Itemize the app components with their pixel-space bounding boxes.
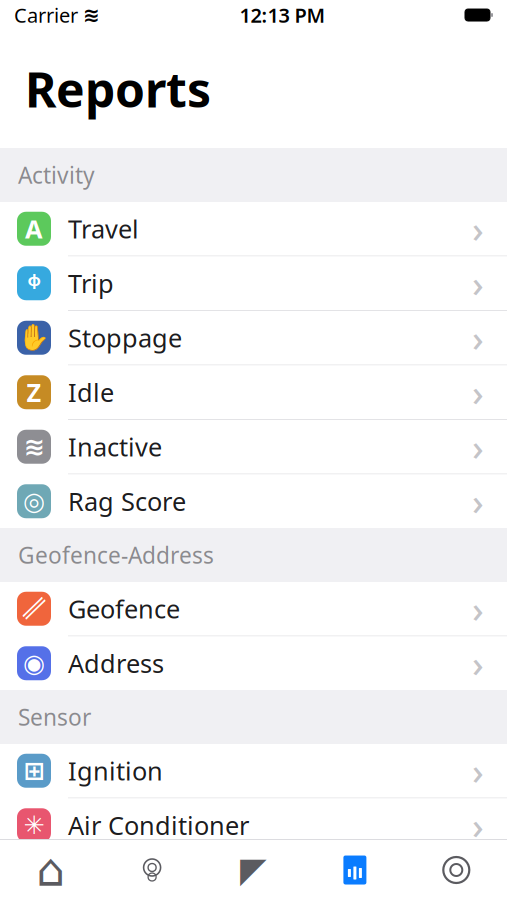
button[interactable]: ᵠ bbox=[0, 256, 507, 310]
staticText: Sensor bbox=[18, 702, 91, 732]
button[interactable]: A bbox=[0, 202, 507, 255]
staticText: Rag Score bbox=[68, 484, 186, 518]
staticText: ✳ bbox=[23, 811, 44, 840]
staticText: Activity bbox=[18, 160, 95, 190]
staticText: › bbox=[472, 259, 484, 307]
staticText: A bbox=[25, 212, 43, 245]
button[interactable]: Settings bbox=[406, 840, 507, 900]
staticText: ◌ bbox=[26, 863, 41, 896]
staticText: Travel bbox=[68, 212, 139, 245]
staticText: › bbox=[472, 585, 484, 633]
staticText: › bbox=[472, 639, 484, 687]
button[interactable]: Places bbox=[101, 840, 203, 900]
button[interactable]: Home bbox=[0, 840, 101, 900]
staticText: ≋ bbox=[23, 432, 44, 461]
button[interactable]: ✋ bbox=[0, 311, 507, 364]
staticText: Address bbox=[68, 646, 164, 680]
staticText: Geofence bbox=[68, 592, 180, 625]
button[interactable]: Reports bbox=[304, 840, 406, 900]
staticText: › bbox=[472, 205, 484, 253]
staticText: › bbox=[472, 423, 484, 471]
staticText: Reports bbox=[25, 57, 211, 121]
staticText: ✋ bbox=[18, 323, 50, 352]
staticText: ◎ bbox=[23, 487, 45, 516]
staticText: ⌂ bbox=[36, 844, 65, 896]
staticText: Z bbox=[26, 375, 41, 409]
staticText: ᵠ bbox=[27, 266, 40, 300]
staticText: › bbox=[472, 368, 484, 416]
staticText: Geofence-Address bbox=[18, 540, 214, 570]
staticText: Stoppage bbox=[68, 321, 182, 354]
staticText: 12:13 PM bbox=[239, 2, 325, 28]
staticText: › bbox=[472, 801, 484, 849]
staticText: › bbox=[472, 747, 484, 795]
staticText: ◤ bbox=[240, 850, 267, 890]
staticText: Ignition bbox=[68, 754, 163, 787]
button[interactable]: ✳ bbox=[0, 798, 507, 852]
staticText: › bbox=[472, 477, 484, 525]
staticText: ◉ bbox=[23, 649, 45, 678]
staticText: Air Conditioner bbox=[68, 808, 249, 842]
button[interactable]: Z bbox=[0, 365, 507, 419]
staticText: Trip bbox=[68, 266, 114, 300]
staticText: Carrier bbox=[14, 2, 78, 28]
staticText: Inactive bbox=[68, 430, 162, 463]
button[interactable]: Track bbox=[203, 840, 304, 900]
staticText: ⊞ bbox=[23, 756, 44, 785]
button[interactable]: ⊞ bbox=[0, 744, 507, 797]
staticText: Idle bbox=[68, 375, 114, 409]
button[interactable]: ◌ bbox=[0, 853, 507, 900]
staticText: ⑊ bbox=[21, 594, 46, 623]
staticText: › bbox=[472, 314, 484, 362]
button[interactable]: ≋ bbox=[0, 420, 507, 473]
staticText: ≋ bbox=[83, 4, 100, 26]
button[interactable]: ◎ bbox=[0, 474, 507, 528]
button[interactable]: ◉ bbox=[0, 636, 507, 690]
button[interactable]: ⑊ bbox=[0, 582, 507, 635]
